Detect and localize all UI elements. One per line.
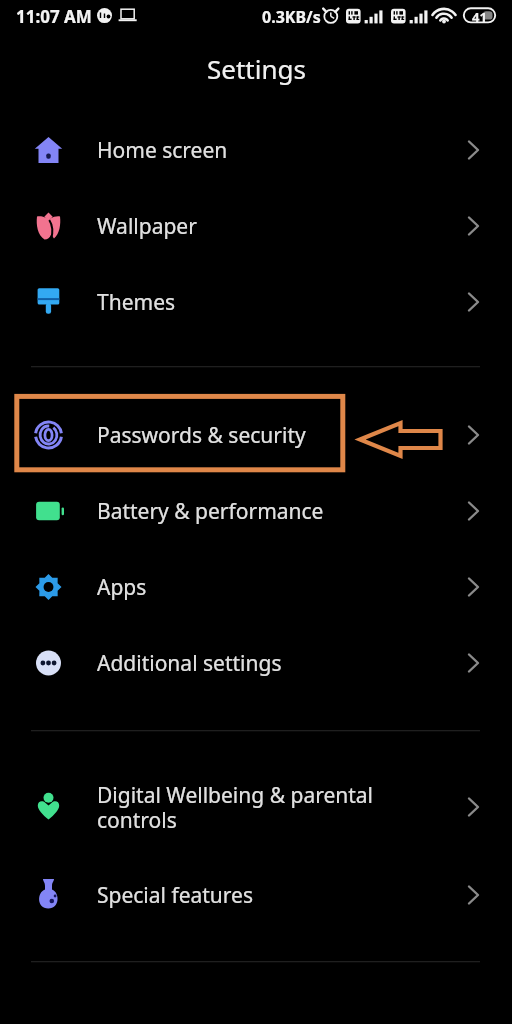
staticText: Themes [97,288,176,317]
button[interactable]: Digital Wellbeing & parental [0,769,512,845]
staticText: 41 [472,8,487,26]
staticText: Additional settings [97,649,282,678]
button[interactable]: Additional settings [0,625,512,701]
button[interactable]: Apps [0,549,512,625]
staticText: 0.3KB/s [262,6,321,28]
button[interactable]: Special features [0,857,512,933]
staticText: Passwords & security [97,421,306,450]
staticText: controls [97,806,177,835]
staticText: Wallpaper [97,212,197,241]
staticText: Apps [97,573,147,602]
staticText: Special features [97,881,254,910]
staticText: 11:07 AM [16,5,92,28]
button[interactable]: Themes [0,264,512,340]
staticText: Battery & performance [97,497,324,526]
staticText: Settings [207,51,306,86]
button[interactable]: Wallpaper [0,188,512,264]
staticText: Digital Wellbeing & parental [97,781,374,810]
button[interactable]: Battery & performance [0,473,512,549]
staticText: Home screen [97,136,228,165]
button[interactable]: Home screen [0,112,512,188]
button[interactable]: Passwords & security [0,397,512,473]
